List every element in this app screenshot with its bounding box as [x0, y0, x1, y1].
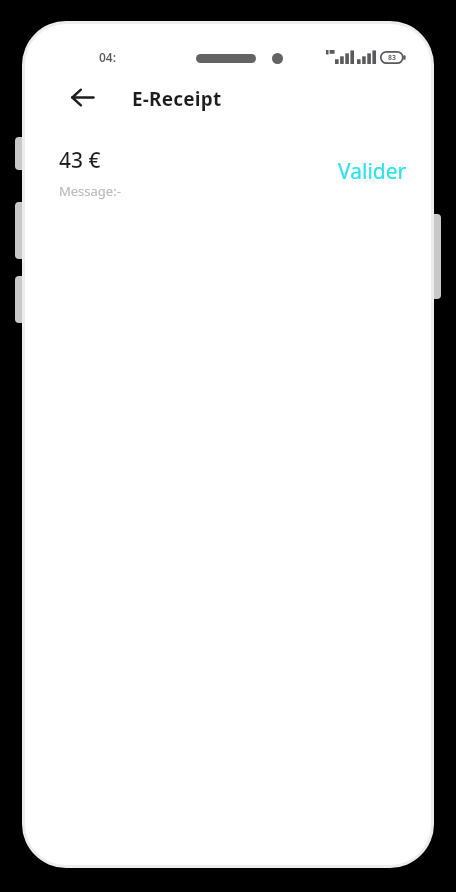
- staticText: E-Receipt: [132, 86, 222, 112]
- staticText: 83: [388, 53, 397, 63]
- staticText: Valider: [338, 157, 407, 186]
- staticText: Message:-: [59, 182, 121, 200]
- staticText: 43 €: [59, 146, 101, 175]
- button[interactable]: Valider: [333, 155, 412, 188]
- button[interactable]: Back: [59, 74, 105, 120]
- staticText: 04:: [99, 49, 117, 65]
